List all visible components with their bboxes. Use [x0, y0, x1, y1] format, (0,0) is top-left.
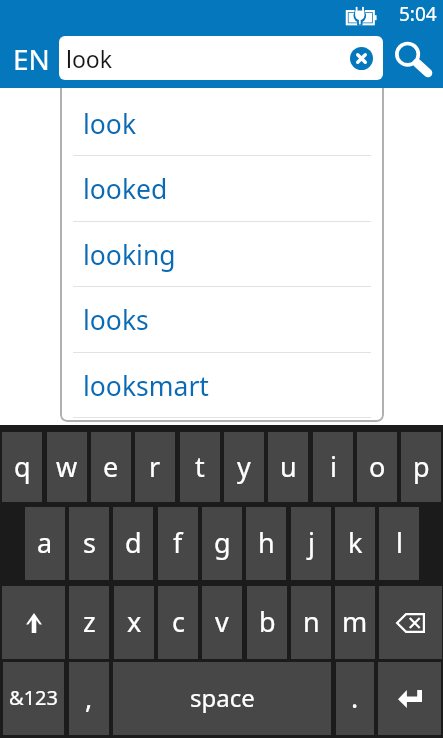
button[interactable]: o: [357, 432, 397, 502]
other: Battery charging: [346, 6, 378, 26]
staticText: space: [190, 681, 255, 714]
button[interactable]: s: [69, 507, 109, 580]
staticText: r: [149, 448, 161, 485]
button[interactable]: p: [401, 432, 441, 502]
staticText: q: [14, 448, 31, 485]
staticText: o: [369, 448, 386, 485]
button[interactable]: space: [113, 662, 331, 735]
staticText: t: [195, 448, 205, 485]
button[interactable]: j: [291, 507, 331, 580]
button[interactable]: looking: [60, 222, 384, 287]
staticText: f: [173, 524, 183, 561]
staticText: c: [172, 603, 185, 640]
button[interactable]: y: [224, 432, 264, 502]
button[interactable]: look: [59, 36, 383, 80]
staticText: ,: [85, 679, 93, 716]
button[interactable]: Shift: [2, 586, 65, 659]
button[interactable]: d: [113, 507, 153, 580]
button[interactable]: k: [335, 507, 375, 580]
staticText: z: [83, 603, 96, 640]
staticText: i: [330, 448, 337, 485]
button[interactable]: q: [2, 432, 42, 502]
button[interactable]: &123: [3, 662, 64, 735]
button[interactable]: g: [202, 507, 242, 580]
staticText: b: [259, 603, 276, 640]
staticText: e: [103, 448, 119, 485]
staticText: .: [351, 679, 359, 716]
staticText: g: [214, 524, 231, 561]
staticText: l: [396, 524, 403, 561]
button[interactable]: n: [291, 586, 331, 659]
staticText: v: [215, 603, 229, 640]
staticText: EN: [13, 40, 50, 78]
staticText: a: [37, 524, 53, 561]
button[interactable]: Enter: [378, 662, 441, 735]
staticText: k: [348, 524, 363, 561]
button[interactable]: Clear search: [350, 47, 373, 70]
button[interactable]: f: [158, 507, 198, 580]
button[interactable]: z: [69, 586, 109, 659]
button[interactable]: w: [47, 432, 87, 502]
staticText: m: [342, 603, 368, 640]
button[interactable]: e: [91, 432, 131, 502]
button[interactable]: look: [60, 91, 384, 156]
button[interactable]: v: [202, 586, 242, 659]
button[interactable]: m: [335, 586, 375, 659]
staticText: x: [127, 603, 142, 640]
staticText: s: [83, 524, 96, 561]
button[interactable]: .: [336, 662, 374, 735]
button[interactable]: Search: [383, 30, 443, 88]
staticText: p: [413, 448, 430, 485]
staticText: w: [56, 448, 78, 485]
button[interactable]: l: [379, 507, 419, 580]
staticText: look: [83, 106, 137, 142]
staticText: u: [280, 448, 297, 485]
button[interactable]: a: [25, 507, 65, 580]
staticText: j: [308, 524, 315, 561]
staticText: n: [303, 603, 320, 640]
button[interactable]: Backspace: [379, 586, 442, 659]
button[interactable]: r: [135, 432, 175, 502]
staticText: 5:04: [399, 1, 437, 27]
button[interactable]: b: [247, 586, 287, 659]
button[interactable]: x: [114, 586, 154, 659]
button[interactable]: ,: [69, 662, 109, 735]
button[interactable]: looks: [60, 287, 384, 352]
button[interactable]: EN: [2, 30, 61, 88]
button[interactable]: u: [268, 432, 308, 502]
staticText: looks: [83, 302, 149, 338]
button[interactable]: looked: [60, 156, 384, 221]
button[interactable]: h: [246, 507, 286, 580]
staticText: looking: [83, 237, 176, 273]
staticText: y: [237, 448, 251, 485]
staticText: h: [258, 524, 275, 561]
staticText: looked: [83, 171, 168, 207]
button[interactable]: c: [158, 586, 198, 659]
button[interactable]: i: [313, 432, 353, 502]
staticText: looksmart: [83, 368, 209, 404]
staticText: d: [125, 524, 142, 561]
staticText: look: [66, 43, 113, 74]
button[interactable]: looksmart: [60, 353, 384, 418]
staticText: &123: [9, 684, 58, 711]
button[interactable]: t: [180, 432, 220, 502]
